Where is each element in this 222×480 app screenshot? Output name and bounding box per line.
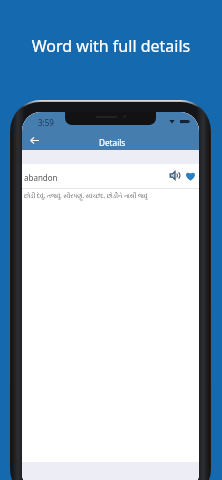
- button[interactable]: Back: [26, 132, 43, 149]
- button[interactable]: Add to favourites: [184, 170, 196, 181]
- staticText: Word with full details: [0, 35, 222, 57]
- staticText: છોડી દેવું, તજવું, સ્વૈરપણું, સ્વચ્છંદ, …: [24, 192, 148, 200]
- staticText: Details: [99, 137, 126, 148]
- staticText: abandon: [24, 172, 58, 183]
- button[interactable]: Play pronunciation: [169, 170, 181, 181]
- staticText: 3:59: [38, 117, 54, 128]
